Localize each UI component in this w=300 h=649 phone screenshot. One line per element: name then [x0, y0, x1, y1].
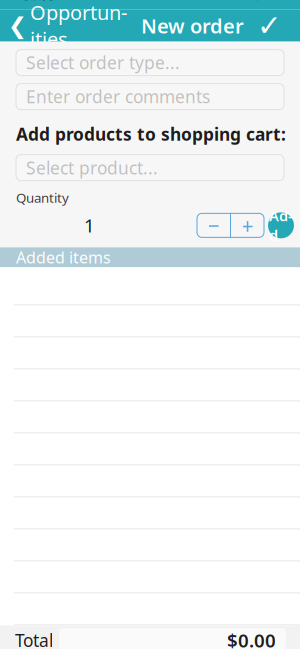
- staticText: Quantity: [16, 189, 69, 206]
- staticText: Enter order comments: [26, 85, 210, 108]
- staticText: Add products to shopping cart:: [16, 123, 286, 146]
- staticText: ◥: [246, 0, 257, 2]
- staticText: Add: [269, 206, 293, 245]
- staticText: Select product...: [26, 156, 158, 179]
- staticText: ✓: [257, 9, 282, 42]
- staticText: Select order type...: [26, 51, 180, 74]
- staticText: +: [241, 211, 253, 239]
- staticText: Added items: [16, 247, 111, 268]
- staticText: −: [207, 211, 219, 239]
- staticText: $0.00: [227, 628, 276, 649]
- staticText: Opportunities: [30, 0, 127, 52]
- button[interactable]: ❮: [0, 0, 127, 58]
- button[interactable]: Save order: [245, 5, 294, 46]
- button[interactable]: Increase quantity: [231, 213, 264, 237]
- button[interactable]: Decrease quantity: [197, 213, 230, 237]
- button[interactable]: Enter order comments: [0, 84, 284, 110]
- staticText: New order: [141, 12, 244, 39]
- staticText: Total: [15, 629, 53, 649]
- staticText: 1: [84, 213, 95, 238]
- staticText: ❮: [8, 13, 27, 38]
- button[interactable]: Add: [268, 212, 294, 238]
- staticText: 3:45: [22, 0, 57, 5]
- button[interactable]: Select order type...: [0, 50, 284, 76]
- button[interactable]: Select product...: [0, 155, 284, 181]
